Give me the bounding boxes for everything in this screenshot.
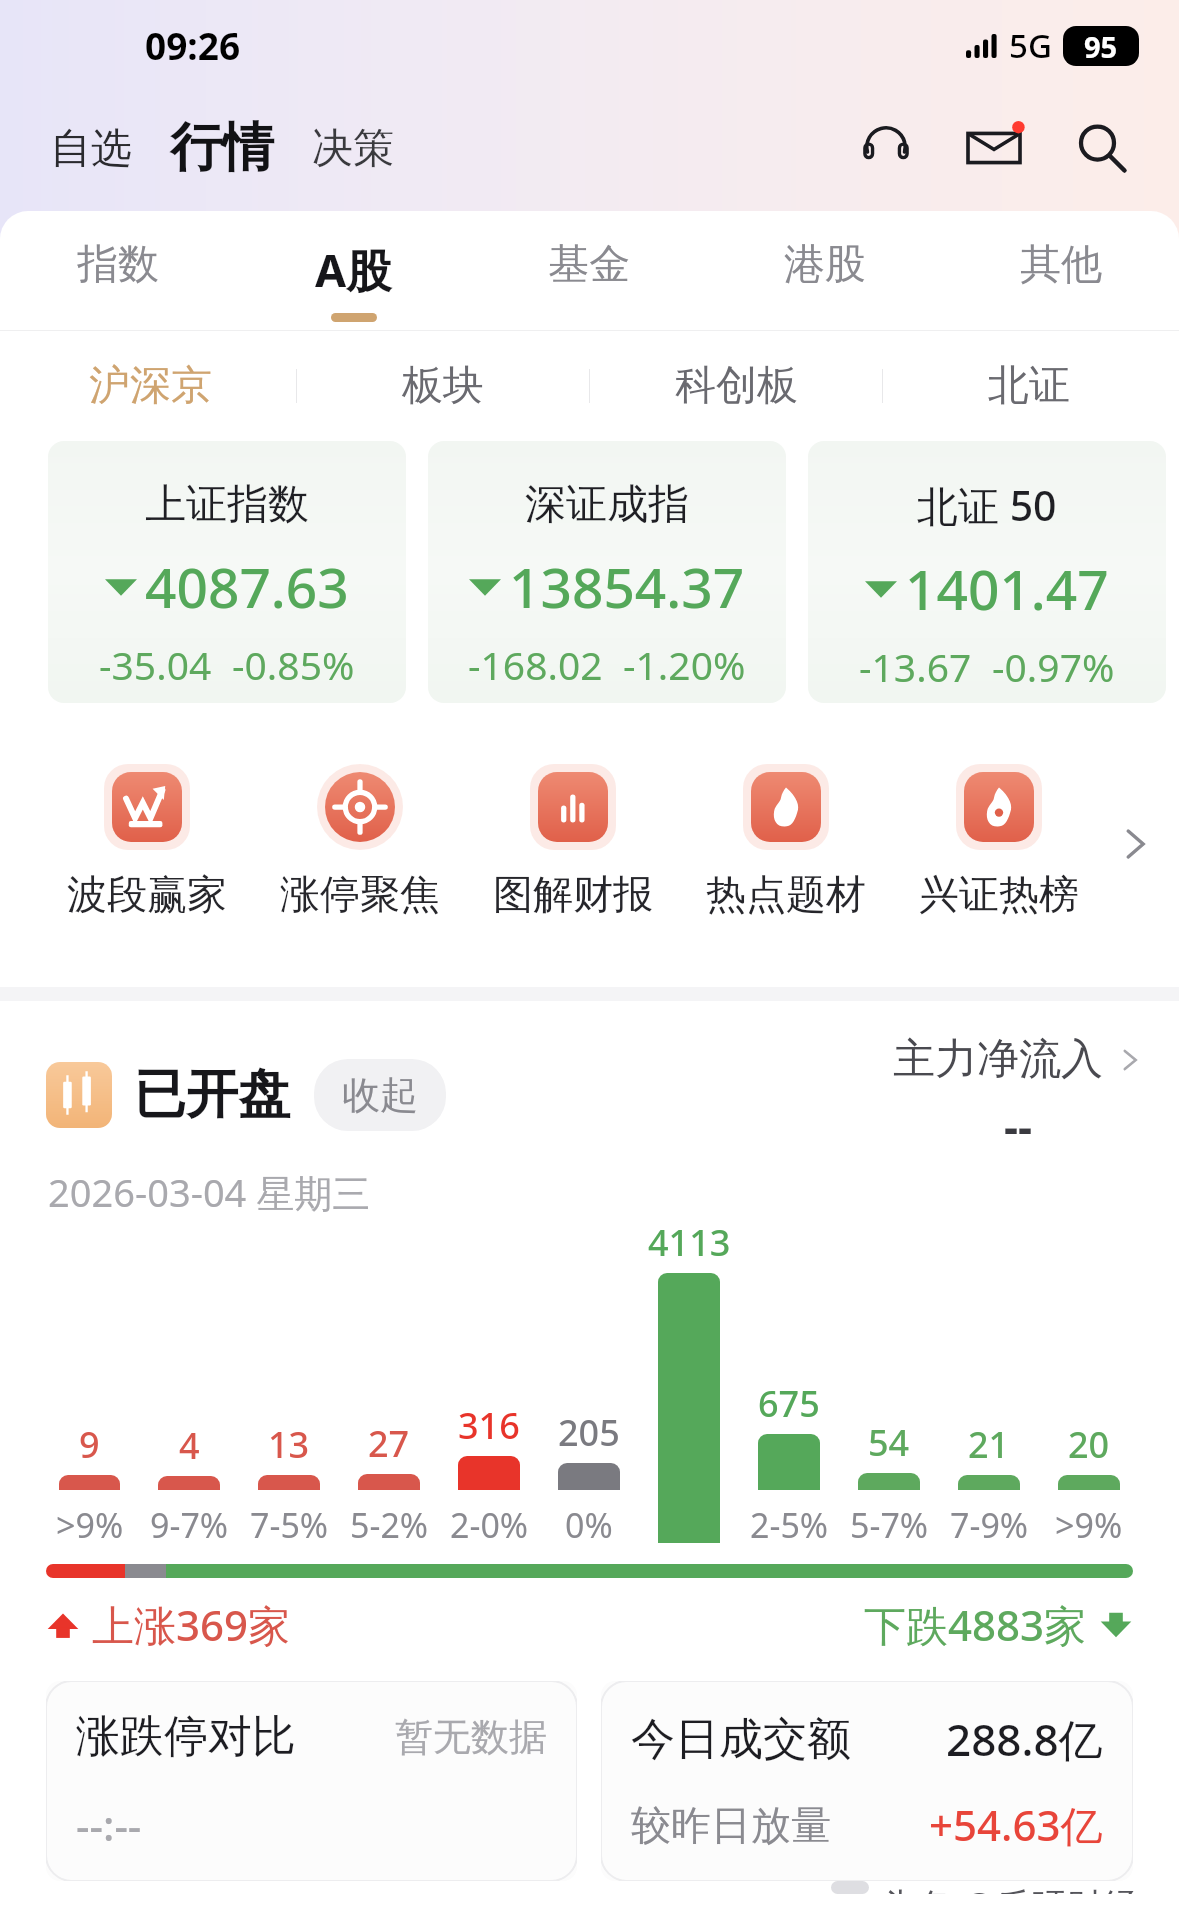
button[interactable]: 沪深京 <box>4 331 296 441</box>
staticText: 决策 <box>312 123 394 175</box>
staticText: 涨跌停对比 <box>76 1709 296 1764</box>
button[interactable]: 北证 50 <box>808 441 1166 703</box>
staticText: 13 <box>268 1420 310 1469</box>
button[interactable]: Search <box>1065 111 1139 185</box>
button[interactable]: Customer service <box>849 111 923 185</box>
staticText: 自选 <box>50 123 132 175</box>
staticText: 7-9% <box>950 1502 1029 1548</box>
button[interactable]: 板块 <box>297 331 589 441</box>
button[interactable]: 决策 <box>308 117 398 181</box>
button[interactable]: 基金 <box>471 239 707 331</box>
button[interactable]: 波段赢家 <box>40 739 253 949</box>
staticText: -0.85% <box>232 638 355 691</box>
staticText: 09:26 <box>145 20 241 70</box>
button[interactable]: 北证 <box>883 331 1175 441</box>
staticText: 2-0% <box>450 1502 529 1548</box>
staticText: 沪深京 <box>89 360 212 412</box>
staticText: 收起 <box>342 1071 418 1119</box>
button[interactable]: 港股 <box>707 239 943 331</box>
staticText: 热点题材 <box>706 869 866 919</box>
button[interactable]: 行情 <box>166 115 278 181</box>
button[interactable]: 图解财报 <box>466 739 679 949</box>
staticText: 13854.37 <box>509 549 745 624</box>
button[interactable]: 涨跌停对比 <box>46 1681 577 1881</box>
staticText: 95 <box>1084 27 1118 66</box>
staticText: 较昨日放量 <box>631 1800 831 1850</box>
staticText: 5-2% <box>350 1502 429 1548</box>
staticText: 板块 <box>402 360 484 412</box>
staticText: 指数 <box>77 239 159 291</box>
staticText: 图解财报 <box>493 869 653 919</box>
staticText: 涨停聚焦 <box>280 869 440 919</box>
staticText: 行情 <box>170 115 274 181</box>
staticText: >9% <box>1055 1502 1123 1548</box>
staticText: 27 <box>368 1419 410 1468</box>
staticText: -35.04 <box>99 638 212 691</box>
staticText: 下跌4883家 <box>864 1596 1087 1653</box>
staticText: 4087.63 <box>145 549 349 624</box>
staticText: -13.67 <box>859 640 972 693</box>
staticText: 2026-03-04 星期三 <box>48 1166 371 1218</box>
staticText: 北证 <box>988 360 1070 412</box>
staticText: 675 <box>758 1379 820 1428</box>
staticText: 北证 50 <box>917 477 1057 533</box>
staticText: 波段赢家 <box>67 869 227 919</box>
button[interactable]: 收起 <box>314 1059 446 1131</box>
button[interactable]: 科创板 <box>590 331 882 441</box>
staticText: 上证指数 <box>145 479 309 531</box>
button[interactable]: 涨停聚焦 <box>253 739 466 949</box>
button[interactable]: 兴证热榜 <box>892 739 1105 949</box>
staticText: 科创板 <box>675 360 798 412</box>
staticText: 5-7% <box>850 1502 929 1548</box>
button[interactable]: 自选 <box>46 117 136 181</box>
staticText: 主力净流入 <box>893 1033 1103 1086</box>
staticText: 已开盘 <box>134 1062 290 1128</box>
staticText: 今日成交额 <box>631 1712 851 1767</box>
staticText: 7-5% <box>250 1502 329 1548</box>
staticText: 54 <box>868 1418 910 1467</box>
button[interactable]: 热点题材 <box>679 739 892 949</box>
staticText: 20 <box>1068 1420 1110 1469</box>
staticText: -168.02 <box>468 638 603 691</box>
button[interactable]: Messages <box>957 111 1031 185</box>
staticText: 4113 <box>648 1218 731 1267</box>
staticText: --:-- <box>76 1796 142 1853</box>
button[interactable]: 主力净流入 <box>893 1033 1143 1086</box>
staticText: 4 <box>179 1421 200 1470</box>
staticText: 暂无数据 <box>395 1713 547 1761</box>
button[interactable]: More <box>1107 816 1163 872</box>
button[interactable]: 深证成指 <box>428 441 786 703</box>
button[interactable]: 其他 <box>943 239 1179 331</box>
button[interactable]: 指数 <box>0 239 235 331</box>
button[interactable]: 今日成交额 <box>601 1681 1133 1881</box>
staticText: 兴证热榜 <box>919 869 1079 919</box>
staticText: >9% <box>56 1502 124 1548</box>
staticText: 205 <box>558 1408 620 1457</box>
staticText: 288.8亿 <box>946 1709 1103 1769</box>
staticText: 9-7% <box>150 1502 229 1548</box>
staticText: -1.20% <box>623 638 746 691</box>
staticText: A股 <box>315 239 392 300</box>
staticText: -- <box>1004 1096 1033 1156</box>
staticText: 21 <box>968 1420 1010 1469</box>
staticText: 316 <box>458 1401 520 1450</box>
staticText: 头条 @乐呀财经 <box>881 1881 1139 1894</box>
staticText: 0% <box>565 1502 613 1548</box>
staticText: 港股 <box>784 239 866 291</box>
staticText: 上涨369家 <box>92 1596 291 1653</box>
staticText: -0.97% <box>992 640 1115 693</box>
staticText: 基金 <box>548 239 630 291</box>
staticText: 1401.47 <box>905 551 1109 626</box>
staticText: 其他 <box>1020 239 1102 291</box>
button[interactable]: A股 <box>235 239 471 331</box>
staticText: +54.63亿 <box>929 1796 1103 1853</box>
button[interactable]: 上证指数 <box>48 441 406 703</box>
staticText: 9 <box>79 1420 100 1469</box>
staticText: 2-5% <box>750 1502 829 1548</box>
staticText: 深证成指 <box>525 479 689 531</box>
staticText: 5G <box>1009 23 1052 68</box>
